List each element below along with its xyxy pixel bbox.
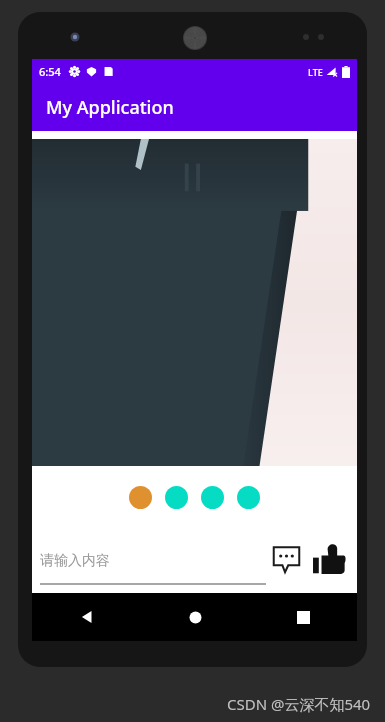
button[interactable]: Home <box>141 593 249 641</box>
button[interactable]: Back <box>32 593 141 641</box>
button[interactable]: Avatar 1 <box>129 486 152 509</box>
button[interactable]: Avatar 2 <box>165 486 188 509</box>
button[interactable]: 请输入内容 <box>40 537 266 585</box>
staticText: 请输入内容 <box>40 552 110 570</box>
button[interactable]: Avatar 3 <box>201 486 224 509</box>
button[interactable]: Avatar 4 <box>237 486 260 509</box>
staticText: My Application <box>46 95 174 120</box>
button[interactable]: My Application <box>32 84 357 131</box>
staticText: LTE <box>308 66 323 78</box>
staticText: 6:54 <box>39 64 61 79</box>
button[interactable]: Recents <box>249 593 357 641</box>
button[interactable]: Like <box>309 539 349 579</box>
button[interactable]: Photo <box>32 139 357 466</box>
button[interactable]: Comment <box>268 541 304 577</box>
staticText: CSDN @云深不知540 <box>227 694 371 714</box>
